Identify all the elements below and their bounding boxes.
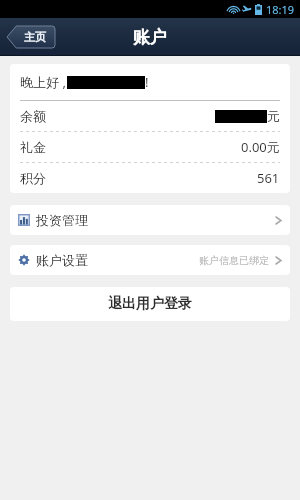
staticText: 561 — [257, 169, 280, 187]
staticText: 礼金 — [20, 139, 46, 155]
button[interactable]: 投资管理 — [10, 205, 290, 235]
button[interactable]: 主页 — [7, 26, 55, 48]
staticText: 账户信息已绑定 — [199, 254, 269, 267]
staticText: 晚上好 , — [20, 73, 66, 91]
staticText: 18:19 — [266, 2, 295, 17]
staticText: 余额 — [20, 108, 46, 124]
staticText: 投资管理 — [36, 212, 88, 228]
staticText: 账户 — [133, 27, 167, 48]
staticText: 账户设置 — [36, 252, 88, 268]
staticText: 主页 — [24, 30, 46, 44]
staticText: 元 — [267, 108, 280, 124]
button[interactable]: 账户设置 — [10, 245, 290, 275]
staticText: ! — [145, 73, 149, 91]
staticText: 0.00元 — [241, 138, 280, 156]
button[interactable]: 退出用户登录 — [10, 287, 290, 321]
staticText: 退出用户登录 — [108, 295, 192, 313]
staticText: 积分 — [20, 170, 46, 186]
